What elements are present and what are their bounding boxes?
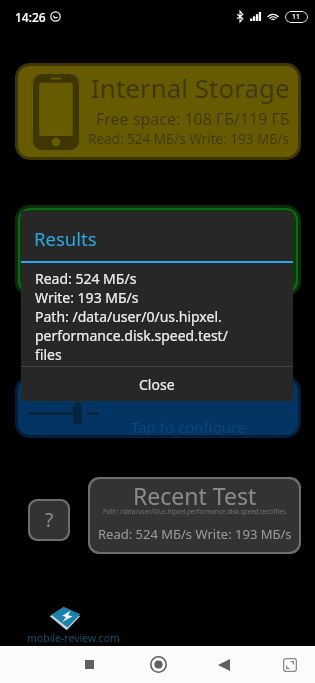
staticText: Read: 524 МБ/s Write: 193 МБ/s bbox=[88, 130, 290, 148]
button[interactable]: Internal Storage bbox=[18, 66, 298, 157]
button[interactable]: Recent apps bbox=[68, 649, 110, 680]
staticText: Tap to configure bbox=[131, 417, 246, 435]
staticText: Internal Storage bbox=[91, 70, 290, 105]
button[interactable]: Close bbox=[21, 367, 293, 401]
button[interactable]: Home bbox=[137, 649, 179, 680]
staticText: Free space: 108 ГБ/119 ГБ bbox=[96, 108, 290, 130]
button[interactable]: ? bbox=[30, 501, 68, 539]
staticText: mobile-review.com bbox=[27, 631, 120, 645]
staticText: ? bbox=[45, 507, 54, 533]
staticText: Results bbox=[34, 226, 97, 251]
button[interactable]: Tap to configure bbox=[18, 379, 298, 435]
staticText: Read: 524 МБ/s Write: 193 МБ/s Path: /da… bbox=[35, 269, 228, 364]
staticText: Path: /data/user/0/us.hipxel.performance… bbox=[103, 507, 286, 516]
staticText: 11 bbox=[292, 12, 301, 22]
button[interactable] bbox=[20, 210, 296, 291]
staticText: Close bbox=[139, 375, 175, 394]
staticText: Recent Test bbox=[133, 480, 257, 511]
button[interactable]: Screenshot bbox=[269, 649, 311, 680]
staticText: Read: 524 МБ/s Write: 193 МБ/s bbox=[98, 525, 292, 543]
button[interactable]: Back bbox=[203, 649, 245, 680]
button[interactable]: Recent Test bbox=[90, 479, 299, 552]
staticText: 14:26 bbox=[15, 9, 46, 25]
